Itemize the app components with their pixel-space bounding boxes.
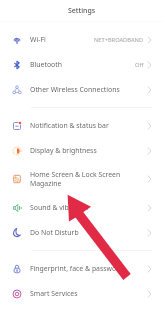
button[interactable]: Home Screen & Lock Screen Magazine <box>0 163 163 195</box>
button[interactable]: Notification & status bar <box>0 113 163 138</box>
staticText: Notification & status bar <box>30 121 140 130</box>
staticText: Wi-Fi <box>30 35 85 44</box>
button[interactable]: Smart Services <box>0 281 163 306</box>
button[interactable]: Other Wireless Connections <box>0 77 163 102</box>
staticText: NET+BROADBAND <box>94 36 144 44</box>
staticText: Smart Services <box>30 289 140 298</box>
staticText: Home Screen & Lock Screen Magazine <box>30 170 128 188</box>
button[interactable]: Wi-Fi <box>0 27 163 52</box>
button[interactable]: Sound & vibration <box>0 195 163 220</box>
staticText: Fingerprint, face & password <box>30 264 140 273</box>
staticText: Display & brightness <box>30 146 140 155</box>
button[interactable]: Bluetooth <box>0 52 163 77</box>
staticText: Off <box>135 61 144 69</box>
button[interactable]: Fingerprint, face & password <box>0 256 163 281</box>
staticText: Settings <box>68 6 96 16</box>
button[interactable]: Display & brightness <box>0 138 163 163</box>
staticText: Do Not Disturb <box>30 228 140 237</box>
staticText: Sound & vibration <box>30 203 140 212</box>
button[interactable]: Do Not Disturb <box>0 220 163 245</box>
staticText: Bluetooth <box>30 60 85 69</box>
staticText: Other Wireless Connections <box>30 85 140 94</box>
